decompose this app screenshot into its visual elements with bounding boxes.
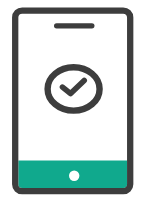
button[interactable]: Phone setup complete [0, 0, 147, 200]
